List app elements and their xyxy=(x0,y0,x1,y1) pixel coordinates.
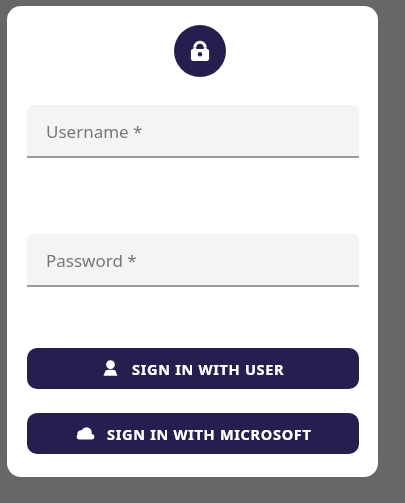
button[interactable]: SIGN IN WITH USER xyxy=(27,348,359,389)
other: Secure login xyxy=(174,25,226,77)
staticText: SIGN IN WITH MICROSOFT xyxy=(107,424,312,444)
staticText: Username * xyxy=(46,120,143,143)
staticText: SIGN IN WITH USER xyxy=(132,359,285,379)
staticText: Password * xyxy=(46,249,137,272)
button[interactable]: Password * xyxy=(27,234,359,288)
button[interactable]: SIGN IN WITH MICROSOFT xyxy=(27,413,359,454)
button[interactable]: Username * xyxy=(27,105,359,159)
